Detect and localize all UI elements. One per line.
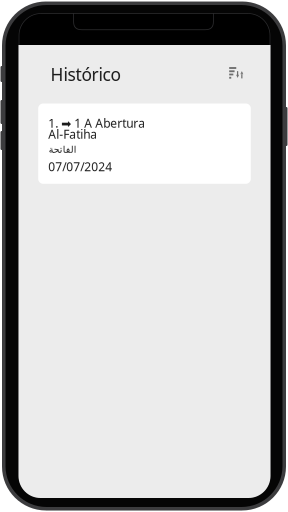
staticText: الفاتحة [48,144,76,155]
staticText: 1. ➡ 1 A Abertura [48,115,145,131]
button[interactable]: 1. ➡ 1 A Abertura [38,103,251,184]
button[interactable]: Sort [223,63,248,85]
staticText: 07/07/2024 [48,158,112,174]
staticText: Al-Fatiha [48,126,97,142]
staticText: Histórico [50,63,120,86]
